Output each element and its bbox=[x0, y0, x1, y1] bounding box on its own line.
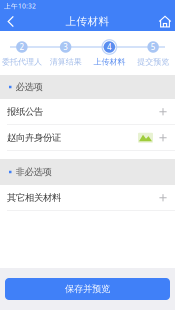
staticText: 赵向卉身份证 bbox=[7, 132, 61, 143]
staticText: 委托代理人 bbox=[2, 57, 42, 67]
staticText: 清算结果 bbox=[50, 57, 82, 67]
staticText: 5 bbox=[151, 42, 156, 52]
button[interactable]: 保存并预览 bbox=[5, 278, 170, 300]
staticText: 2 bbox=[19, 42, 24, 52]
button[interactable]: Home bbox=[154, 12, 175, 31]
staticText: 保存并预览 bbox=[65, 283, 110, 295]
staticText: 上传材料 bbox=[65, 15, 109, 28]
button[interactable]: Back bbox=[0, 12, 22, 31]
staticText: 4 bbox=[107, 42, 112, 52]
staticText: 上传材料 bbox=[93, 57, 125, 67]
staticText: 提交预览 bbox=[137, 57, 169, 67]
staticText: 非必选项 bbox=[15, 166, 51, 178]
staticText: 3 bbox=[63, 42, 68, 52]
button[interactable]: 报纸公告 bbox=[0, 99, 175, 125]
staticText: 其它相关材料 bbox=[7, 192, 61, 203]
staticText: 上午10:32 bbox=[4, 2, 36, 10]
staticText: 报纸公告 bbox=[7, 106, 43, 117]
button[interactable]: 赵向卉身份证 bbox=[0, 125, 175, 151]
staticText: 必选项 bbox=[15, 81, 42, 93]
button[interactable]: 其它相关材料 bbox=[0, 185, 175, 211]
